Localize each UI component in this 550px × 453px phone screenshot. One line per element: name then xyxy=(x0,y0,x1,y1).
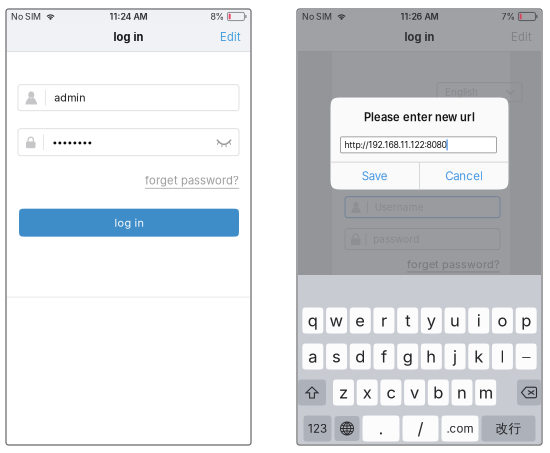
button[interactable]: Shift xyxy=(298,379,326,405)
staticText: o xyxy=(497,310,507,330)
button[interactable]: Change keyboard xyxy=(334,416,359,441)
staticText: l xyxy=(500,346,504,366)
staticText: v xyxy=(410,382,419,402)
button[interactable]: . xyxy=(362,415,399,441)
button[interactable]: w xyxy=(326,307,347,333)
staticText: Please enter new url xyxy=(364,110,475,124)
button[interactable]: Delete xyxy=(517,379,541,405)
button[interactable]: English xyxy=(437,83,522,102)
button[interactable]: .com xyxy=(441,415,478,441)
button[interactable]: z xyxy=(333,379,354,405)
staticText: d xyxy=(355,346,365,366)
button[interactable]: d xyxy=(350,343,371,369)
staticText: 123 xyxy=(308,422,327,435)
staticText: j xyxy=(453,346,457,366)
button[interactable]: 123 xyxy=(303,415,331,441)
staticText: x xyxy=(363,382,372,402)
staticText: u xyxy=(450,310,460,330)
button[interactable]: Save xyxy=(330,162,419,189)
button[interactable]: v xyxy=(404,379,425,405)
staticText: http://192.168.11.122:8080 xyxy=(344,140,446,150)
staticText: .com xyxy=(446,422,473,435)
button[interactable]: – xyxy=(516,343,537,369)
staticText: h xyxy=(426,346,436,366)
staticText: c xyxy=(386,382,395,402)
staticText: z xyxy=(339,382,348,402)
button[interactable]: b xyxy=(428,379,449,405)
staticText: m xyxy=(479,382,493,402)
button[interactable]: k xyxy=(468,343,489,369)
staticText: log in xyxy=(404,30,434,44)
staticText: admin xyxy=(54,91,85,104)
staticText: s xyxy=(332,346,341,366)
button[interactable]: e xyxy=(350,307,371,333)
staticText: f xyxy=(381,346,387,366)
button[interactable]: n xyxy=(451,379,472,405)
button[interactable]: log in xyxy=(19,209,239,237)
button[interactable]: x xyxy=(357,379,378,405)
button[interactable]: o xyxy=(492,307,513,333)
button[interactable]: / xyxy=(402,415,438,441)
staticText: . xyxy=(378,418,383,438)
staticText: t xyxy=(405,310,410,330)
button[interactable]: a xyxy=(302,343,323,369)
staticText: forget password? xyxy=(145,174,239,187)
button[interactable]: y xyxy=(421,307,442,333)
button[interactable]: Cancel xyxy=(420,162,508,189)
staticText: Username xyxy=(375,201,424,213)
button[interactable]: Edit xyxy=(210,23,250,51)
staticText: g xyxy=(403,346,413,366)
staticText: q xyxy=(308,310,318,330)
button[interactable]: p xyxy=(516,307,537,333)
staticText: No SIM xyxy=(11,11,41,22)
button[interactable]: t xyxy=(397,307,418,333)
staticText: password xyxy=(373,233,419,245)
staticText: forget password? xyxy=(407,258,500,271)
button[interactable]: i xyxy=(468,307,489,333)
button[interactable]: u xyxy=(445,307,466,333)
button[interactable]: Show password xyxy=(211,129,237,155)
button[interactable]: j xyxy=(445,343,466,369)
staticText: Save xyxy=(362,169,388,183)
staticText: 7% xyxy=(501,11,515,22)
staticText: / xyxy=(417,418,423,438)
staticText: 8% xyxy=(210,11,224,22)
staticText: Cancel xyxy=(445,169,483,183)
button[interactable]: g xyxy=(397,343,418,369)
staticText: r xyxy=(381,310,387,330)
staticText: •••••••• xyxy=(52,137,92,148)
staticText: a xyxy=(308,346,317,366)
staticText: 改行 xyxy=(495,420,521,436)
button[interactable]: s xyxy=(326,343,347,369)
staticText: b xyxy=(433,382,443,402)
staticText: n xyxy=(457,382,467,402)
button[interactable]: c xyxy=(380,379,401,405)
button[interactable]: h xyxy=(421,343,442,369)
button[interactable]: Edit xyxy=(501,23,541,51)
button[interactable]: r xyxy=(373,307,394,333)
staticText: y xyxy=(427,310,436,330)
staticText: English xyxy=(445,86,478,98)
button[interactable]: q xyxy=(302,307,323,333)
staticText: Edit xyxy=(220,30,241,44)
staticText: k xyxy=(474,346,483,366)
staticText: log in xyxy=(113,30,143,44)
staticText: e xyxy=(355,310,365,330)
button[interactable]: l xyxy=(492,343,513,369)
staticText: – xyxy=(522,346,530,366)
staticText: No SIM xyxy=(302,11,332,22)
button[interactable]: 改行 xyxy=(481,415,535,441)
button[interactable]: f xyxy=(373,343,394,369)
staticText: i xyxy=(477,310,481,330)
staticText: p xyxy=(521,310,531,330)
button[interactable]: m xyxy=(475,379,496,405)
staticText: 11:26 AM xyxy=(400,11,438,22)
staticText: Edit xyxy=(511,30,532,44)
staticText: w xyxy=(330,310,344,330)
button[interactable]: forget password? xyxy=(145,172,239,191)
staticText: 11:24 AM xyxy=(109,11,147,22)
staticText: log in xyxy=(114,216,143,229)
